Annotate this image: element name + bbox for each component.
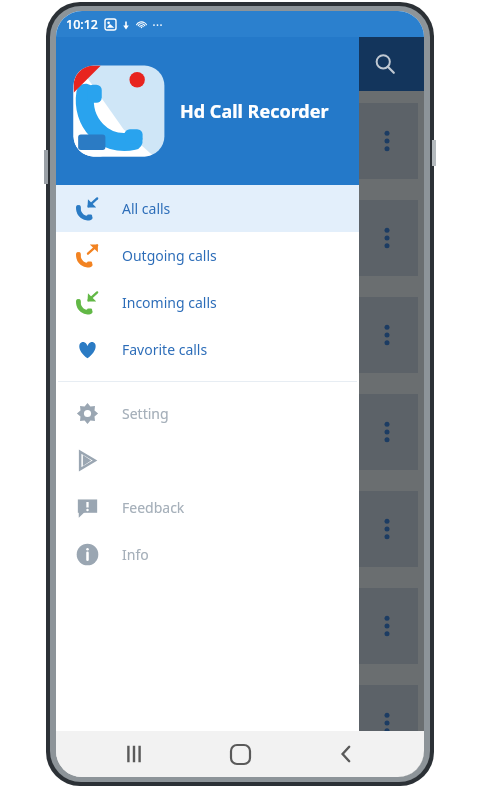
button[interactable]: More options [376,514,398,544]
button[interactable]: More options [62,394,418,470]
button[interactable]: Back [318,731,374,777]
staticText: Setting [122,404,169,423]
button[interactable]: Rate on Play Store [56,437,359,484]
button[interactable]: Home [212,731,268,777]
button[interactable]: More options [376,223,398,253]
button[interactable]: Outgoing calls [56,232,359,279]
staticText: Favorite calls [122,340,208,359]
button[interactable]: More options [62,103,418,179]
button[interactable]: More options [62,685,418,761]
staticText: Feedback [122,498,185,517]
staticText: Info [122,545,149,564]
staticText: Hd Call Recorder [180,99,329,124]
staticText: 10:12 [66,16,99,33]
staticText: Incoming calls [122,293,217,312]
button[interactable]: Incoming calls [56,279,359,326]
button[interactable]: More options [376,708,398,738]
button[interactable]: More options [62,200,418,276]
button[interactable]: More options [376,320,398,350]
staticText: All calls [122,199,171,218]
staticText: Outgoing calls [122,246,217,265]
button[interactable]: More options [62,297,418,373]
button[interactable]: Search [368,47,402,81]
button[interactable]: Feedback [56,484,359,531]
button[interactable]: More options [62,588,418,664]
button[interactable]: All calls [56,185,359,232]
button[interactable]: Favorite calls [56,326,359,373]
button[interactable]: Recents [106,731,162,777]
button[interactable]: More options [376,417,398,447]
button[interactable]: More options [376,611,398,641]
button[interactable]: More options [62,491,418,567]
button[interactable]: Info [56,531,359,578]
button[interactable]: More options [376,126,398,156]
button[interactable]: Setting [56,390,359,437]
